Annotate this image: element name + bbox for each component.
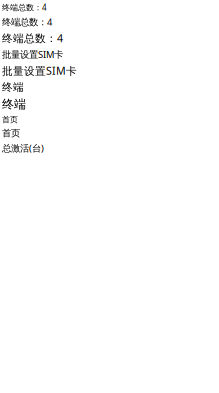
- staticText: 终端: [2, 97, 26, 111]
- staticText: 批量设置SIM卡: [2, 64, 77, 78]
- staticText: 首页: [2, 115, 18, 124]
- staticText: 首页: [2, 127, 20, 139]
- staticText: 终端总数：4: [2, 16, 52, 28]
- staticText: 总激活(台): [2, 142, 44, 154]
- staticText: 终端总数：4: [2, 2, 47, 13]
- staticText: 终端: [2, 81, 24, 94]
- staticText: 终端总数：4: [2, 31, 63, 45]
- staticText: 批量设置SIM卡: [2, 48, 63, 61]
